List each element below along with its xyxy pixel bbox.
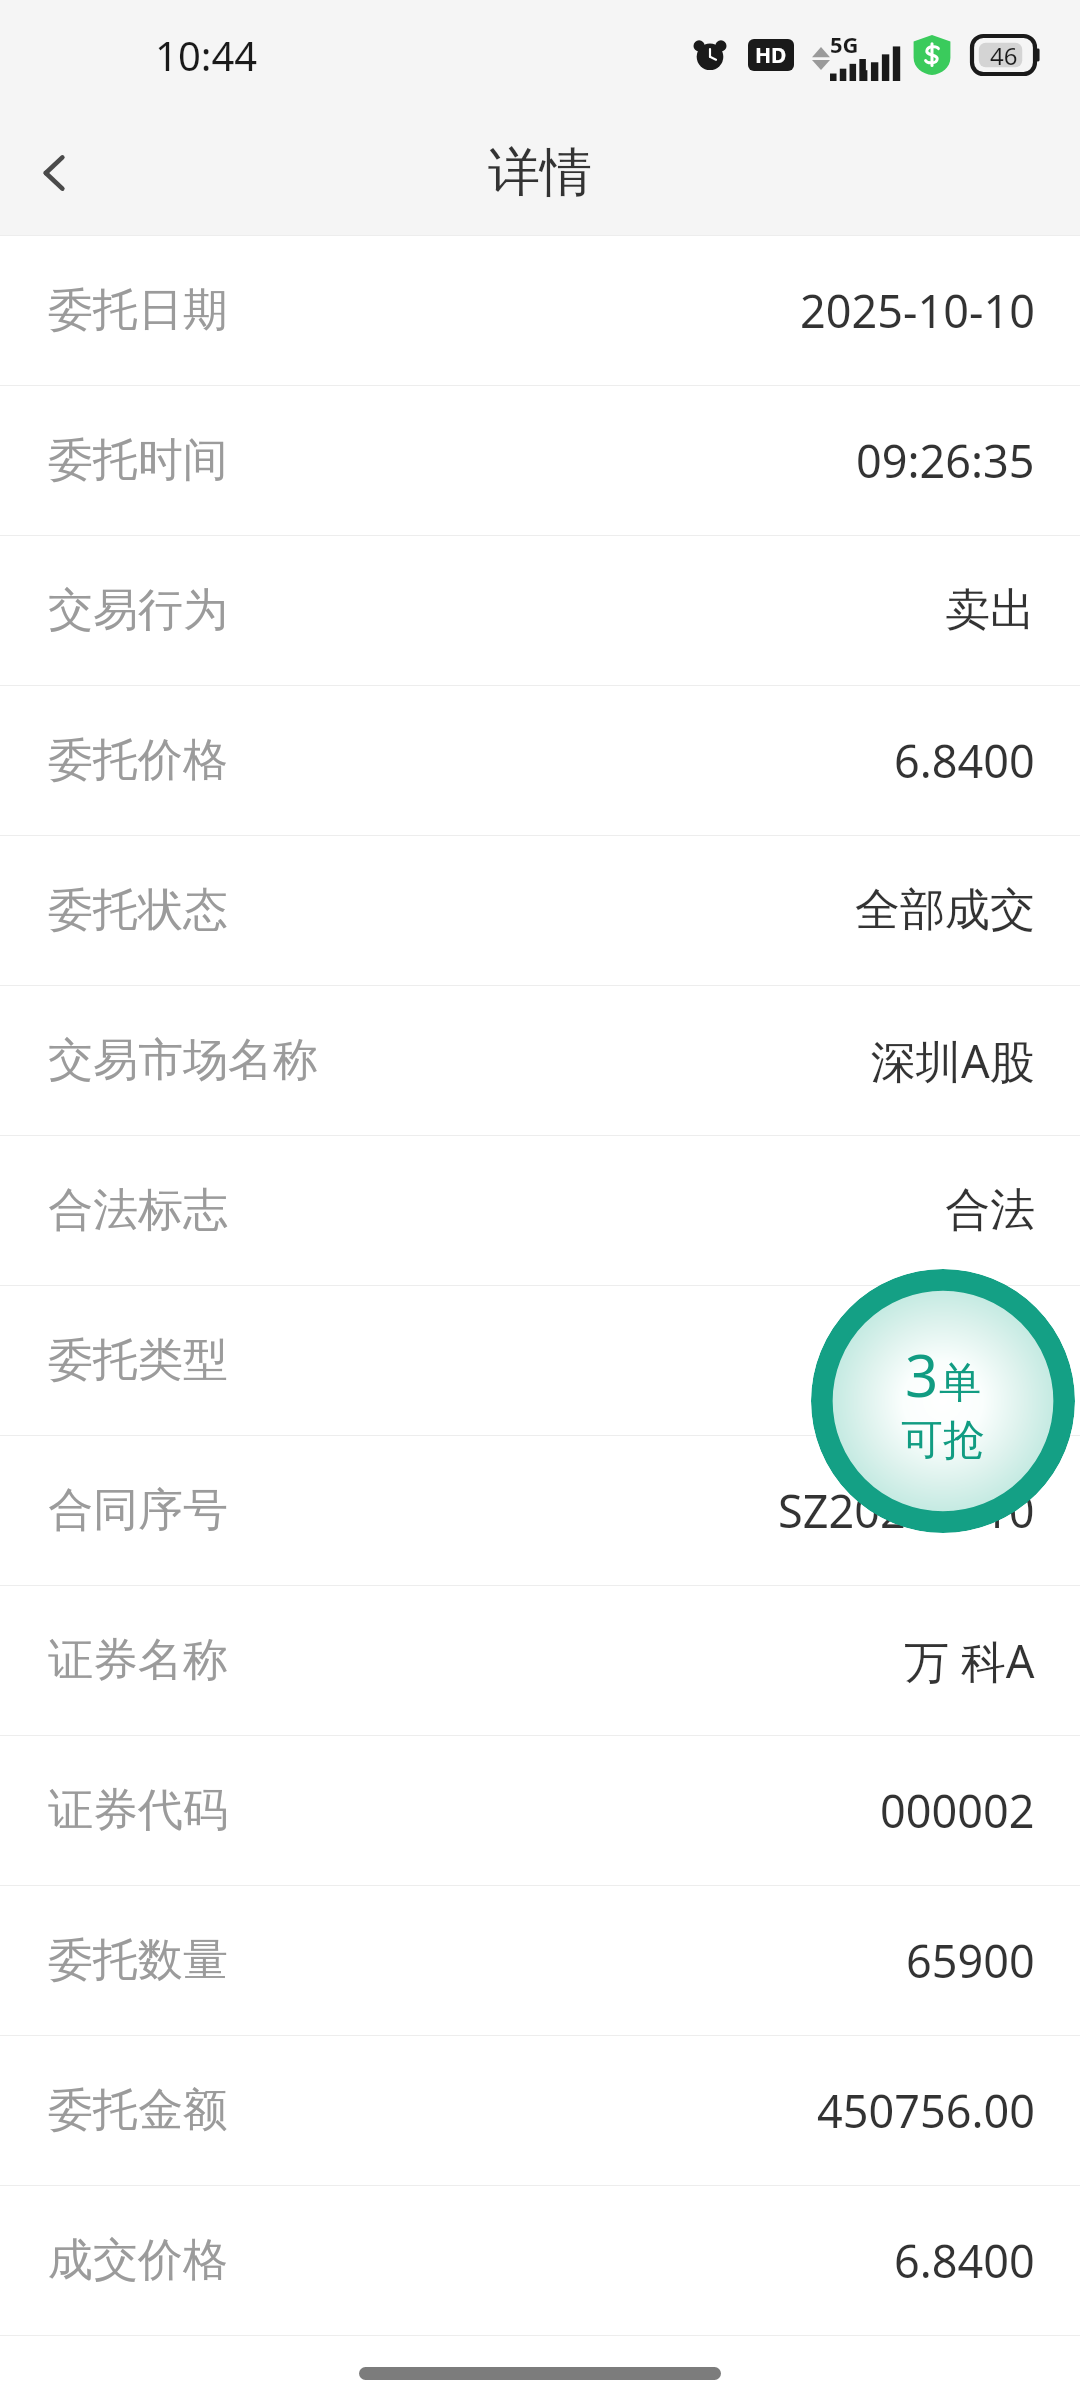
button[interactable]: 委托价格 — [0, 686, 1080, 835]
staticText: 6.8400 — [894, 730, 1035, 791]
staticText: 6.8400 — [894, 2230, 1035, 2291]
button[interactable]: 委托金额 — [0, 2036, 1080, 2185]
staticText: 450756.00 — [817, 2080, 1035, 2141]
staticText: 合同序号 — [48, 1482, 228, 1539]
staticText: 5G — [830, 29, 859, 59]
staticText: 详情 — [488, 140, 592, 206]
staticText: 卖出 — [945, 582, 1035, 639]
staticText: 委托状态 — [48, 882, 228, 939]
staticText: 委托价格 — [48, 732, 228, 789]
staticText: 交易行为 — [48, 582, 228, 639]
button[interactable]: 证券名称 — [0, 1586, 1080, 1735]
staticText: 证券代码 — [48, 1782, 228, 1839]
button[interactable]: 委托日期 — [0, 236, 1080, 385]
button[interactable]: 委托状态 — [0, 836, 1080, 985]
staticText: SZ20251010 — [778, 1480, 1035, 1541]
staticText: 交易市场名称 — [48, 1032, 318, 1089]
staticText: 证券名称 — [48, 1632, 228, 1689]
staticText: 000002 — [880, 1780, 1035, 1841]
button[interactable]: 3单可抢 — [811, 1269, 1075, 1533]
staticText: 成交价格 — [48, 2232, 228, 2289]
staticText: 2025-10-10 — [800, 280, 1035, 341]
button[interactable]: 成交价格 — [0, 2186, 1080, 2335]
staticText: 合法 — [945, 1182, 1035, 1239]
staticText: 单 — [939, 1357, 981, 1410]
staticText: 10:44 — [155, 28, 258, 82]
staticText: 委托数量 — [48, 1932, 228, 1989]
staticText: 合法标志 — [48, 1182, 228, 1239]
button[interactable]: 委托时间 — [0, 386, 1080, 535]
staticText: 46 — [990, 39, 1018, 72]
staticText: 委托类型 — [48, 1332, 228, 1389]
staticText: 全部成交 — [855, 882, 1035, 939]
staticText: 可抢 — [901, 1414, 985, 1467]
staticText: 委托金额 — [48, 2082, 228, 2139]
button[interactable]: 合同序号 — [0, 1436, 1080, 1585]
button[interactable]: 委托数量 — [0, 1886, 1080, 2035]
staticText: HD — [755, 41, 787, 70]
button[interactable]: 交易市场名称 — [0, 986, 1080, 1135]
staticText: 65900 — [906, 1930, 1035, 1991]
staticText: 委托时间 — [48, 432, 228, 489]
button[interactable]: 委托类型 — [0, 1286, 1080, 1435]
button[interactable]: 合法标志 — [0, 1136, 1080, 1285]
staticText: 委托日期 — [48, 282, 228, 339]
button[interactable]: 返回 — [0, 118, 110, 228]
button[interactable]: 证券代码 — [0, 1736, 1080, 1885]
staticText: 深圳A股 — [871, 1030, 1035, 1091]
staticText: 09:26:35 — [856, 430, 1035, 491]
button[interactable]: 交易行为 — [0, 536, 1080, 685]
staticText: 万 科A — [904, 1630, 1035, 1691]
staticText: 3 — [905, 1335, 939, 1414]
